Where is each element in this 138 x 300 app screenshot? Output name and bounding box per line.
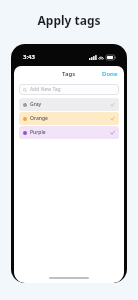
- button[interactable]: Gray: [19, 98, 119, 111]
- button[interactable]: Add New Tag: [19, 84, 119, 95]
- button[interactable]: Purple: [19, 126, 119, 139]
- staticText: Purple: [30, 129, 46, 136]
- staticText: Tags: [62, 70, 76, 78]
- staticText: Gray: [30, 101, 42, 108]
- staticText: Done: [102, 70, 118, 78]
- staticText: 3:43: [23, 53, 35, 61]
- button[interactable]: Done: [96, 67, 124, 81]
- staticText: Add New Tag: [30, 86, 61, 93]
- button[interactable]: Orange: [19, 112, 119, 125]
- staticText: Apply tags: [37, 12, 101, 28]
- staticText: Orange: [30, 115, 48, 122]
